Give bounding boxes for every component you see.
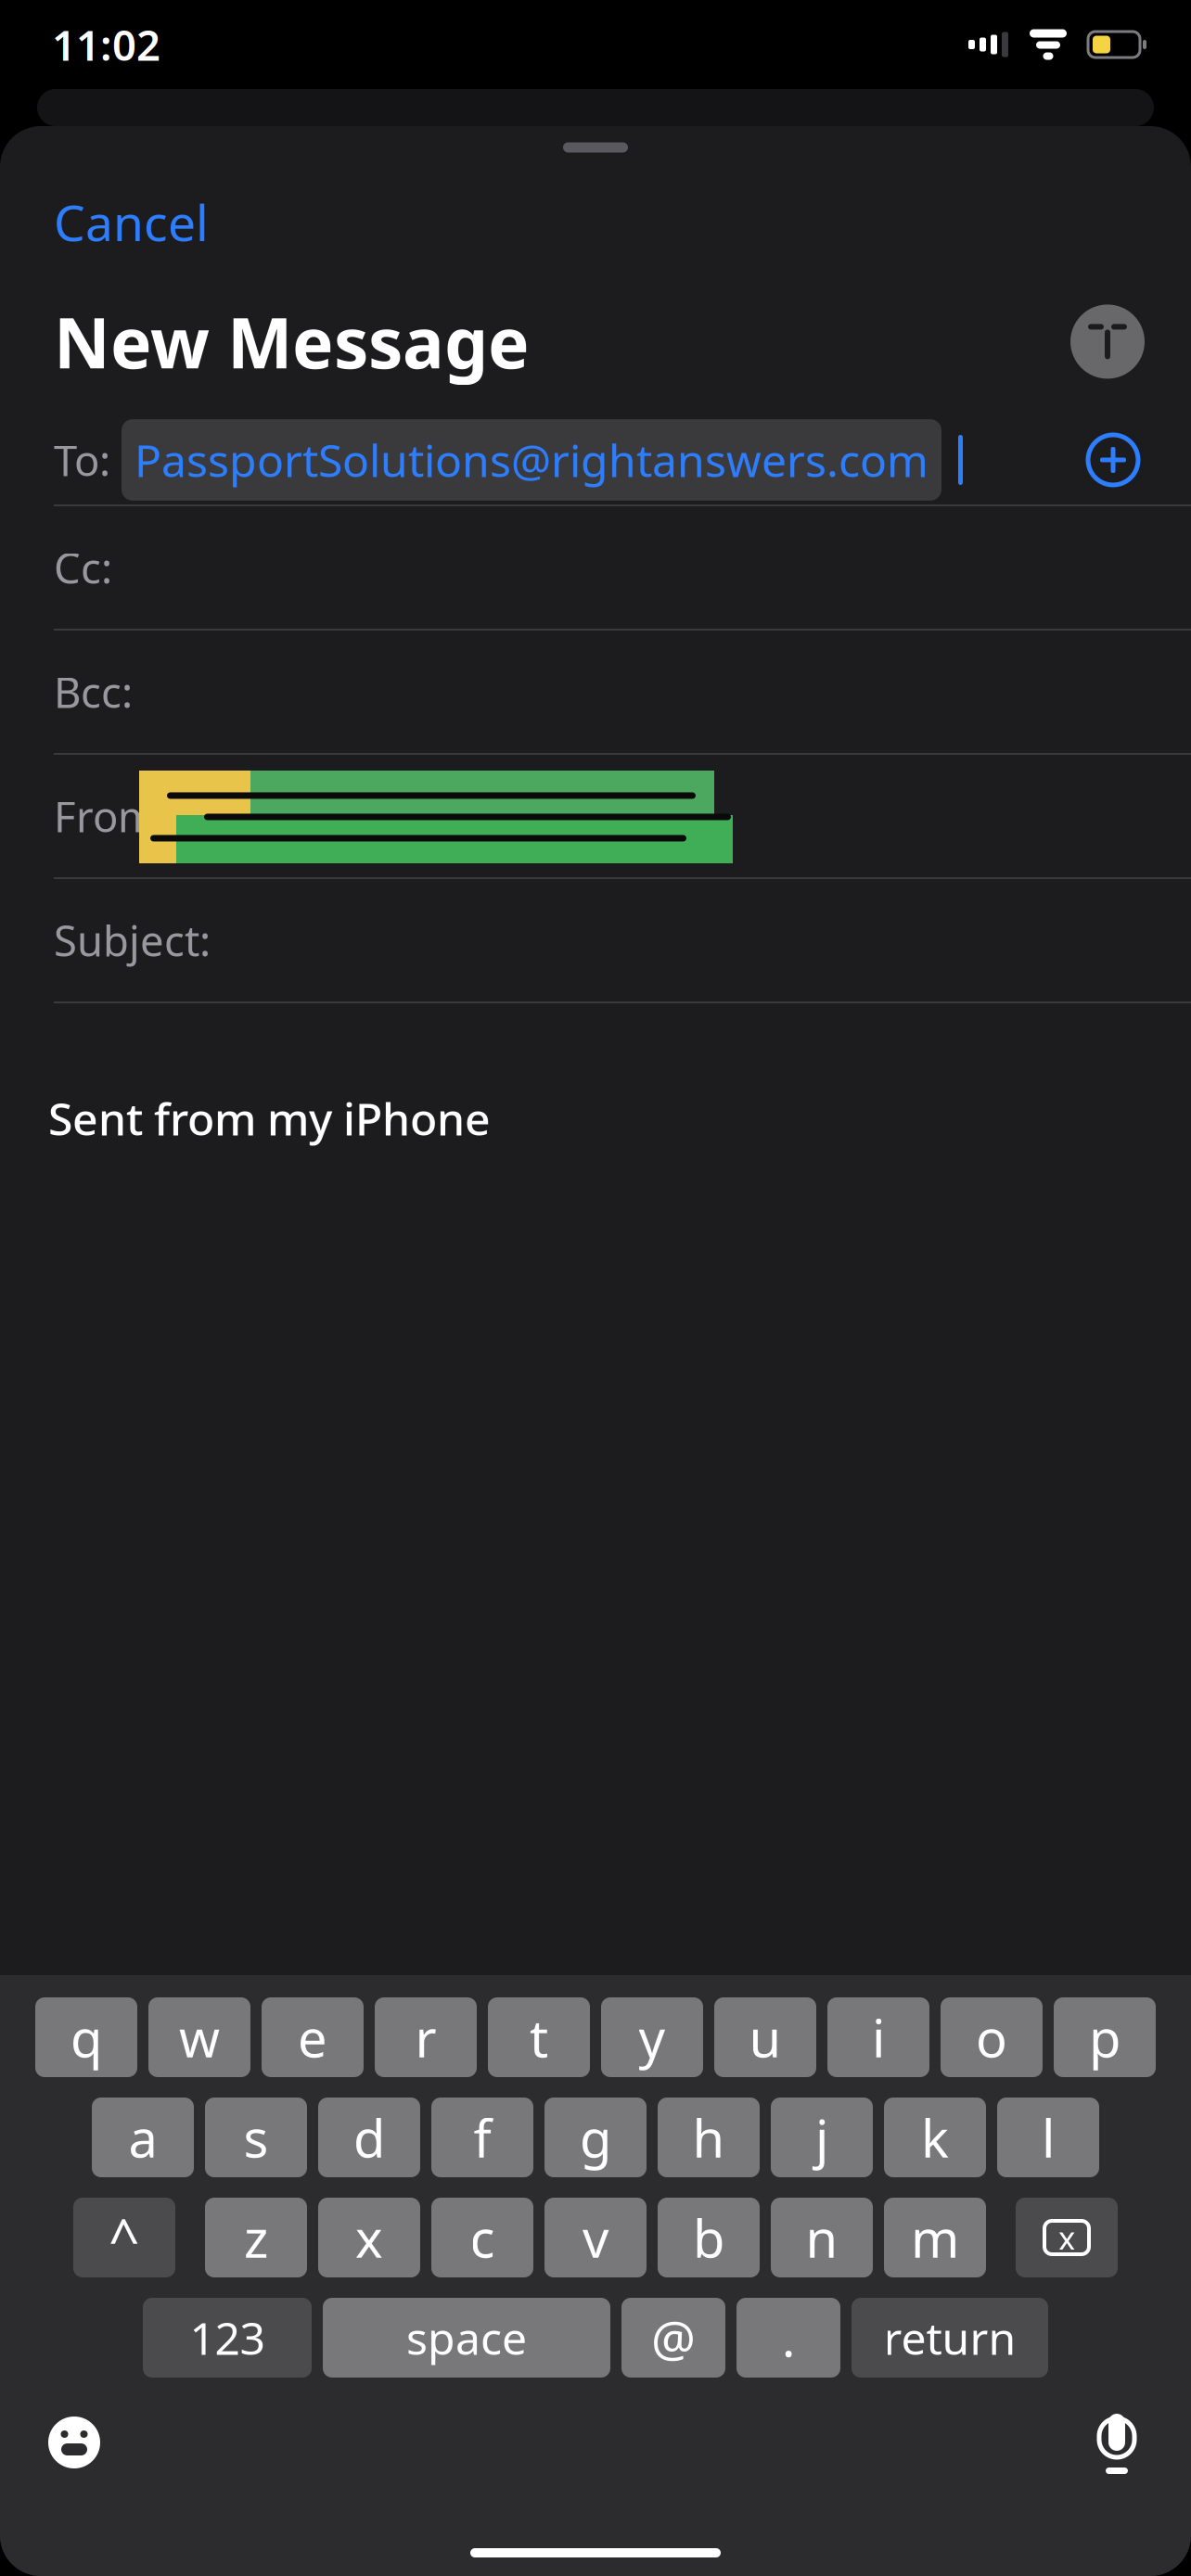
button[interactable]: d xyxy=(318,2098,420,2177)
staticText: h xyxy=(692,2103,725,2172)
staticText: k xyxy=(921,2103,949,2172)
button[interactable]: c xyxy=(431,2198,533,2277)
button[interactable]: Send xyxy=(1065,299,1150,384)
staticText: n xyxy=(806,2203,838,2272)
staticText: a xyxy=(128,2103,157,2172)
staticText: . xyxy=(782,2305,795,2371)
staticText: f xyxy=(474,2103,491,2172)
staticText: v xyxy=(583,2203,608,2272)
staticText: space xyxy=(406,2308,527,2367)
staticText: p xyxy=(1089,2003,1121,2072)
button[interactable]: Emoji xyxy=(35,2404,113,2481)
staticText: m xyxy=(911,2203,959,2272)
button[interactable]: s xyxy=(205,2098,307,2177)
staticText: 123 xyxy=(190,2308,265,2367)
staticText: d xyxy=(353,2103,385,2172)
button[interactable]: @ xyxy=(621,2298,725,2378)
button[interactable]: i xyxy=(827,1997,929,2077)
staticText: t xyxy=(530,2003,548,2072)
button[interactable]: v xyxy=(544,2198,647,2277)
staticText: x xyxy=(1058,2216,1075,2259)
button[interactable]: h xyxy=(658,2098,760,2177)
staticText: @ xyxy=(651,2305,696,2371)
button[interactable]: n xyxy=(771,2198,873,2277)
button[interactable]: o xyxy=(941,1997,1043,2077)
staticText: PassportSolutions@rightanswers.com xyxy=(134,430,928,489)
staticText: ^ xyxy=(109,2201,140,2274)
button[interactable]: b xyxy=(658,2198,760,2277)
button[interactable]: 123 xyxy=(143,2298,312,2378)
button[interactable]: Add contact xyxy=(1074,421,1152,499)
staticText: g xyxy=(580,2103,611,2172)
staticText: b xyxy=(693,2203,724,2272)
button[interactable]: Cancel xyxy=(0,178,235,266)
button[interactable]: return xyxy=(852,2298,1048,2378)
button[interactable]: Shift xyxy=(73,2198,175,2277)
button[interactable]: j xyxy=(771,2098,873,2177)
staticText: c xyxy=(470,2203,495,2272)
staticText: i xyxy=(872,2003,885,2072)
button[interactable]: Dictation xyxy=(1078,2404,1156,2481)
staticText: l xyxy=(1042,2103,1055,2172)
button[interactable]: space xyxy=(323,2298,610,2378)
button[interactable]: w xyxy=(148,1997,250,2077)
staticText: Cc: xyxy=(54,540,112,595)
button[interactable]: m xyxy=(884,2198,986,2277)
button[interactable]: u xyxy=(714,1997,816,2077)
staticText: Cancel xyxy=(54,189,209,255)
staticText: q xyxy=(70,2003,102,2072)
button[interactable]: f xyxy=(431,2098,533,2177)
staticText: y xyxy=(639,2003,666,2072)
staticText: u xyxy=(749,2003,781,2072)
button[interactable]: p xyxy=(1054,1997,1156,2077)
staticText: Bcc: xyxy=(54,664,133,720)
staticText: o xyxy=(976,2003,1007,2072)
staticText: z xyxy=(244,2203,268,2272)
staticText: Sent from my iPhone xyxy=(48,1089,491,1148)
staticText: Subject: xyxy=(54,912,211,968)
button[interactable]: . xyxy=(736,2298,840,2378)
staticText: From: xyxy=(54,788,168,844)
button[interactable]: a xyxy=(92,2098,194,2177)
button[interactable]: Delete xyxy=(1016,2198,1118,2277)
staticText: e xyxy=(298,2003,327,2072)
staticText: 11:02 xyxy=(52,17,160,72)
button[interactable]: t xyxy=(488,1997,590,2077)
button[interactable]: q xyxy=(35,1997,137,2077)
staticText: w xyxy=(179,2003,220,2072)
button[interactable]: g xyxy=(544,2098,647,2177)
staticText: New Message xyxy=(54,296,530,388)
button[interactable]: r xyxy=(375,1997,477,2077)
button[interactable]: k xyxy=(884,2098,986,2177)
button[interactable]: x xyxy=(318,2198,420,2277)
staticText: s xyxy=(243,2103,269,2172)
button[interactable]: e xyxy=(262,1997,364,2077)
staticText: r xyxy=(415,2003,436,2072)
staticText: j xyxy=(815,2103,828,2172)
staticText: To: xyxy=(54,432,110,488)
staticText: x xyxy=(355,2203,383,2272)
button[interactable]: z xyxy=(205,2198,307,2277)
staticText: return xyxy=(884,2308,1016,2367)
button[interactable]: l xyxy=(997,2098,1099,2177)
button[interactable]: y xyxy=(601,1997,703,2077)
